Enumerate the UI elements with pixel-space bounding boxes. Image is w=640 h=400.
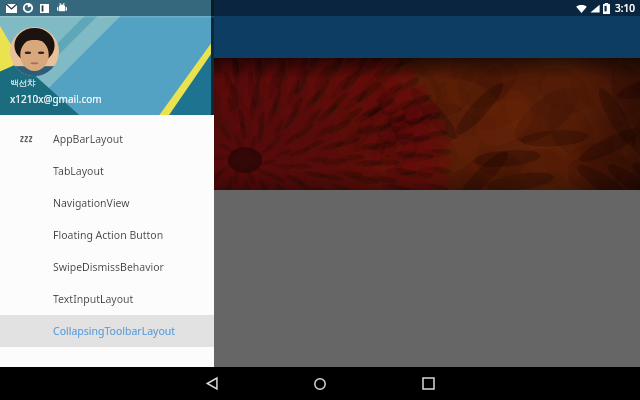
staticText: x1210x@gmail.com [10, 92, 102, 106]
button[interactable]: Back [192, 367, 232, 400]
button[interactable]: SwipeDismissBehavior [0, 251, 214, 283]
button[interactable]: CollapsingToolbarLayout [0, 315, 214, 347]
button[interactable]: NavigationView [0, 187, 214, 219]
staticText: AppBarLayout [53, 132, 124, 146]
button[interactable]: AppBarLayout [0, 123, 214, 155]
staticText: CollapsingToolbarLayout [53, 324, 176, 338]
staticText: TextInputLayout [53, 292, 134, 306]
button[interactable]: Recent apps [408, 367, 448, 400]
button[interactable]: Floating Action Button [0, 219, 214, 251]
staticText: SwipeDismissBehavior [53, 260, 164, 274]
button[interactable]: TextInputLayout [0, 283, 214, 315]
button[interactable]: TabLayout [0, 155, 214, 187]
staticText: NavigationView [53, 196, 130, 210]
button[interactable]: Profile picture [10, 27, 59, 76]
staticText: 3:10 [615, 1, 635, 15]
staticText: TabLayout [53, 164, 104, 178]
staticText: 백선챠 [10, 78, 36, 89]
staticText: Floating Action Button [53, 228, 164, 242]
button[interactable]: Home [300, 367, 340, 400]
